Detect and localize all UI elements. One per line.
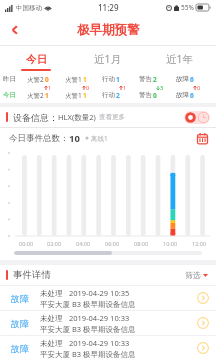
button[interactable]: 筛选 [180,268,213,282]
staticText: 今日 [3,91,16,99]
staticText: 故障 [11,343,29,354]
staticText: 故障 [176,75,189,83]
staticText: 近1月 [94,52,122,66]
staticText: 08:00 [134,240,149,247]
staticText: 火警1 [65,75,82,84]
button[interactable]: 近1月 [72,46,144,72]
button[interactable]: 故障 [0,311,216,335]
staticText: 2019-04-29 10:33 [69,338,130,348]
staticText: 1 [83,91,87,100]
staticText: 02:00 [47,240,62,247]
staticText: 行动 [102,91,115,99]
staticText: 2 [153,75,157,84]
staticText: 2019-04-29 10:35 [69,288,130,298]
staticText: 3 [160,84,164,91]
staticText: 04:00 [76,240,91,247]
staticText: 筛选 [185,270,201,280]
staticText: 行动 [102,75,115,83]
button[interactable]: 设备信息： [0,107,216,127]
staticText: 故障 [176,91,189,99]
staticText: 12:00 [192,240,207,247]
staticText: 故障 [11,318,29,329]
staticText: 10:00 [163,240,178,247]
button[interactable]: 返回 [0,15,30,45]
staticText: 设备信息： [13,112,58,123]
button[interactable]: 今日 [0,46,72,72]
staticText: 中国移动 [16,4,42,12]
staticText: 00:00 [19,240,34,247]
staticText: 6 [190,91,194,100]
staticText: 未处理 [40,289,63,298]
staticText: 故障 [11,293,29,304]
staticText: 1 [123,84,127,91]
staticText: 警告 [139,75,152,83]
staticText: 火警2 [27,91,44,100]
staticText: 0 [153,91,157,100]
staticText: 事件详情 [13,269,51,281]
button[interactable]: 故障 [0,286,216,310]
staticText: 平安大厦 B3 极早期设备信息 [40,299,136,309]
staticText: 1 [45,91,49,100]
staticText: 0 [86,84,90,91]
staticText: 6 [190,75,194,84]
button[interactable]: 近1年 [144,46,216,72]
staticText: 查看更多 [99,113,125,121]
staticText: 未处理 [40,339,63,348]
staticText: 1 [83,75,87,84]
staticText: 平安大厦 B3 极早期设备信息 [40,349,136,359]
staticText: 11:29 [98,2,119,13]
staticText: 06:00 [105,240,120,247]
staticText: 2 [116,91,120,100]
staticText: 昨日 [3,75,16,83]
staticText: 离线1 [91,134,108,143]
staticText: 极早期预警 [77,22,140,38]
staticText: 平安大厦 B3 极早期设备信息 [40,324,136,334]
staticText: 55% [181,3,194,12]
staticText: 0 [45,75,49,84]
staticText: 未处理 [40,314,63,323]
staticText: 10 [69,132,80,145]
staticText: 警告 [139,91,152,99]
staticText: 1 [116,75,120,84]
staticText: 近1年 [166,52,194,66]
button[interactable]: 切换 [184,111,210,124]
staticText: 今日事件总数： [9,133,69,144]
staticText: 2019-04-29 10:33 [69,313,130,323]
staticText: 火警1 [65,91,82,100]
staticText: 1 [48,84,52,91]
button[interactable]: 故障 [0,336,216,360]
staticText: 今日 [26,53,47,66]
button[interactable]: 日历 [192,128,212,148]
staticText: HLX(数量2) [58,112,96,122]
staticText: 火警2 [27,75,44,84]
staticText: 0 [197,84,201,91]
